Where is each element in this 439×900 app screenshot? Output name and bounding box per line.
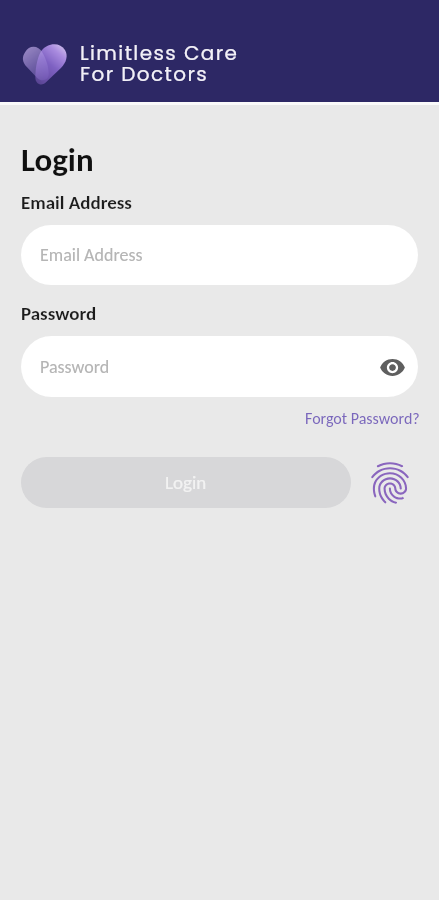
button[interactable]: Login with fingerprint xyxy=(365,458,415,508)
button[interactable]: Show password xyxy=(374,349,410,385)
staticText: Password xyxy=(40,356,110,378)
button[interactable]: Email Address xyxy=(21,225,418,285)
button[interactable]: Login xyxy=(21,457,351,508)
staticText: Login xyxy=(21,140,94,180)
staticText: Password xyxy=(21,302,97,325)
button[interactable]: Forgot Password? xyxy=(305,409,420,429)
staticText: Login xyxy=(165,471,207,494)
staticText: Limitless Care For Doctors xyxy=(80,39,239,88)
button[interactable]: Password xyxy=(21,336,418,397)
staticText: Email Address xyxy=(21,191,132,214)
staticText: Email Address xyxy=(40,244,143,266)
